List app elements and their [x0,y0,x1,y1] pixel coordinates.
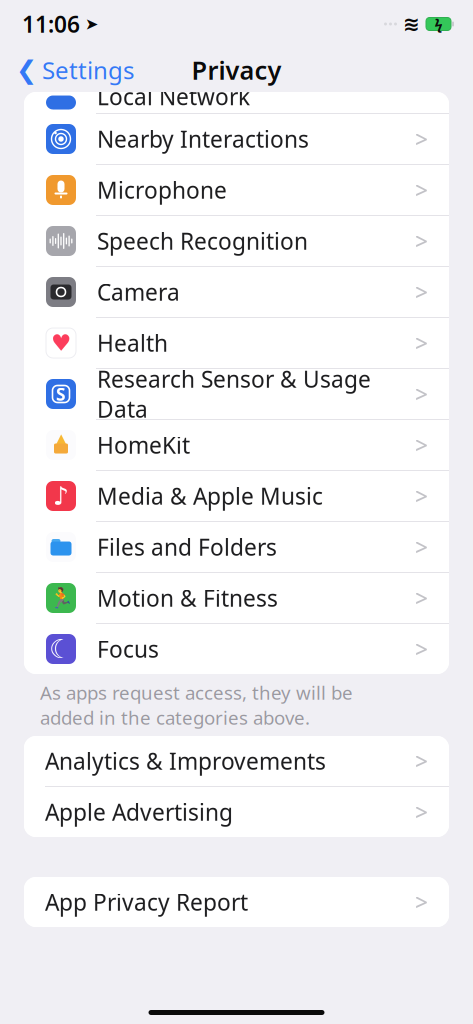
button[interactable]: ▲ [24,420,449,470]
staticText: As apps request access, they will be add… [40,680,353,730]
staticText: > [415,124,428,154]
button[interactable]: ❮ [0,48,134,92]
staticText: Microphone [97,175,227,205]
staticText: Nearby Interactions [97,124,309,154]
staticText: Analytics & Improvements [45,746,326,776]
staticText: 11:06 [22,9,80,39]
staticText: > [415,430,428,460]
button[interactable]: 🏃 [24,573,449,623]
staticText: Local Network [97,81,250,111]
button[interactable]: Microphone [24,165,449,215]
staticText: > [415,481,428,511]
staticText: > [415,328,428,358]
staticText: > [415,277,428,307]
staticText: HomeKit [97,430,190,460]
button[interactable]: S [24,369,449,419]
staticText: ❮ [16,56,37,84]
staticText: > [415,797,428,827]
button[interactable]: Camera [24,267,449,317]
button[interactable]: ☾ [24,624,449,674]
staticText: ➤ [85,15,98,33]
staticText: > [415,634,428,664]
button[interactable]: App Privacy Report [24,877,449,927]
staticText: > [415,226,428,256]
button[interactable]: Files and Folders [24,522,449,572]
staticText: Health [97,328,168,358]
staticText: Research Sensor & Usage Data [97,364,371,424]
button[interactable]: Apple Advertising [24,787,449,837]
button[interactable]: Analytics & Improvements [24,736,449,786]
staticText: > [415,583,428,613]
staticText: Media & Apple Music [97,481,323,511]
staticText: ♪ [53,482,69,510]
staticText: > [415,746,428,776]
staticText: Motion & Fitness [97,583,278,613]
staticText: ▲ [54,430,67,449]
button[interactable]: Speech Recognition [24,216,449,266]
button[interactable]: ♪ [24,471,449,521]
staticText: 🏃 [48,587,73,609]
staticText: ♥ [51,330,71,356]
staticText: Apple Advertising [45,797,233,827]
staticText: Speech Recognition [97,226,308,256]
staticText: S [56,382,66,405]
staticText: ϟ [434,14,442,34]
staticText: > [415,887,428,917]
staticText: App Privacy Report [45,887,248,917]
staticText: Privacy [191,53,281,87]
staticText: Settings [42,54,134,86]
staticText: ☾ [49,634,73,664]
staticText: > [415,532,428,562]
staticText: Files and Folders [97,532,277,562]
staticText: Focus [97,634,159,664]
staticText: > [415,379,428,409]
button[interactable]: ♥ [24,318,449,368]
button[interactable]: Nearby Interactions [24,114,449,164]
staticText: Camera [97,277,180,307]
staticText: ≋ [403,13,420,35]
staticText: > [415,175,428,205]
